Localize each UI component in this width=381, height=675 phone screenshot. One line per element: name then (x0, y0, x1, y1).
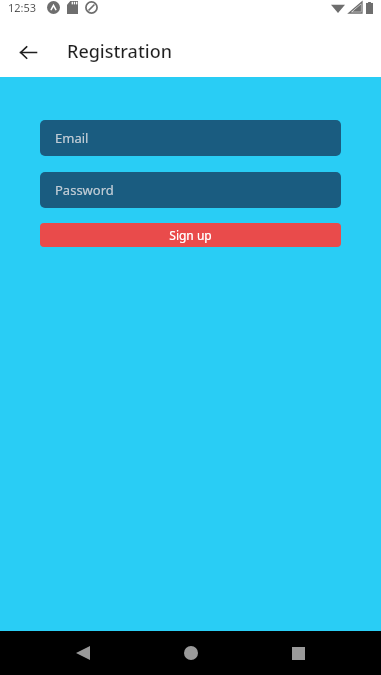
button[interactable]: Password (40, 172, 341, 208)
staticText: Password (55, 181, 114, 199)
staticText: Registration (67, 39, 172, 64)
button[interactable]: Home (167, 631, 215, 675)
staticText: 12:53 (8, 0, 37, 15)
button[interactable]: Back (59, 631, 107, 675)
button[interactable]: Sign up (40, 223, 341, 247)
button[interactable]: Back (8, 32, 48, 72)
staticText: Sign up (169, 227, 212, 243)
button[interactable]: Email (40, 120, 341, 156)
staticText: Email (55, 129, 89, 147)
button[interactable]: Recents (274, 631, 322, 675)
